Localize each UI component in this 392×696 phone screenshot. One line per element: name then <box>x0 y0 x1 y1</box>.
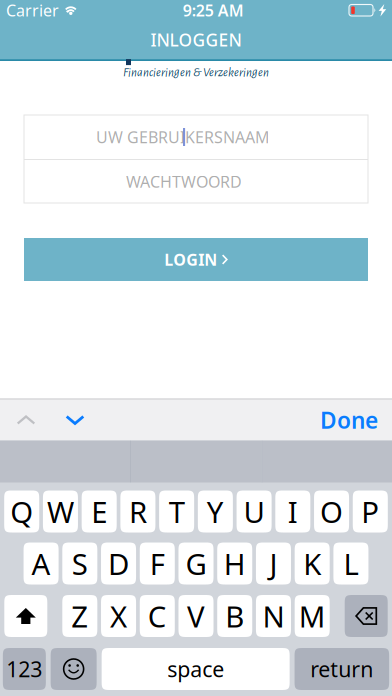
staticText: Z <box>71 596 88 635</box>
staticText: N <box>262 596 284 635</box>
staticText: K <box>303 544 321 583</box>
staticText: I <box>288 492 298 531</box>
staticText: J <box>269 544 277 583</box>
staticText: O <box>320 492 343 531</box>
staticText: B <box>225 596 244 635</box>
staticText: WACHTWOORD <box>126 171 242 192</box>
button[interactable]: Delete <box>345 595 388 637</box>
button[interactable]: return <box>294 648 389 690</box>
button[interactable]: K <box>295 542 330 584</box>
staticText: A <box>32 544 51 583</box>
staticText: U <box>244 492 265 531</box>
button[interactable]: F <box>140 542 175 584</box>
staticText: X <box>110 596 127 635</box>
button[interactable]: G <box>178 542 213 584</box>
button[interactable]: Done <box>320 399 392 440</box>
button[interactable]: E <box>82 490 117 532</box>
button[interactable]: Emoji <box>51 648 97 690</box>
staticText: return <box>310 655 373 683</box>
button[interactable]: UW GEBRUIKERSNAAM <box>24 115 368 159</box>
button[interactable]: P <box>353 490 388 532</box>
staticText: H <box>224 544 246 583</box>
staticText: V <box>187 596 205 635</box>
staticText: 123 <box>6 655 42 683</box>
button[interactable]: A <box>24 542 59 584</box>
staticText: Financieringen & Verzekeringen <box>123 66 269 79</box>
button[interactable]: space <box>102 648 290 690</box>
staticText: W <box>47 492 74 531</box>
button[interactable]: D <box>101 542 136 584</box>
staticText: Carrier <box>6 0 59 21</box>
staticText: UW GEBRUIKERSNAAM <box>96 126 270 148</box>
staticText: Done <box>320 405 378 435</box>
button[interactable]: N <box>256 595 291 637</box>
button[interactable]: W <box>43 490 78 532</box>
staticText: L <box>343 544 358 583</box>
staticText: INLOGGEN <box>150 28 241 51</box>
button[interactable]: O <box>314 490 349 532</box>
button[interactable]: H <box>217 542 252 584</box>
button[interactable]: V <box>178 595 213 637</box>
staticText: 9:25 AM <box>183 0 244 21</box>
button[interactable]: J <box>256 542 291 584</box>
button[interactable]: B <box>217 595 252 637</box>
staticText: M <box>299 596 326 635</box>
staticText: S <box>72 544 88 583</box>
staticText: LOGIN <box>164 249 217 270</box>
button[interactable]: U <box>237 490 272 532</box>
button[interactable]: Shift <box>4 595 47 637</box>
button[interactable]: Previous field <box>0 399 52 440</box>
button[interactable]: Y <box>198 490 233 532</box>
button[interactable]: Z <box>62 595 97 637</box>
staticText: P <box>361 492 379 531</box>
staticText: R <box>129 492 147 531</box>
button[interactable]: X <box>101 595 136 637</box>
staticText: D <box>108 544 129 583</box>
button[interactable]: WACHTWOORD <box>24 160 368 203</box>
button[interactable]: C <box>140 595 175 637</box>
button[interactable]: Next field <box>52 399 98 440</box>
staticText: T <box>169 492 185 531</box>
button[interactable]: L <box>333 542 368 584</box>
staticText: C <box>148 596 167 635</box>
button[interactable]: T <box>159 490 194 532</box>
staticText: E <box>91 492 107 531</box>
button[interactable]: LOGIN <box>24 238 368 281</box>
button[interactable]: 123 <box>3 648 46 690</box>
staticText: F <box>150 544 165 583</box>
button[interactable]: S <box>62 542 97 584</box>
button[interactable]: Q <box>4 490 39 532</box>
button[interactable]: I <box>275 490 310 532</box>
button[interactable]: M <box>295 595 330 637</box>
staticText: Q <box>10 492 33 531</box>
staticText: space <box>167 655 224 683</box>
staticText: Y <box>207 492 224 531</box>
staticText: G <box>185 544 206 583</box>
button[interactable]: R <box>120 490 155 532</box>
